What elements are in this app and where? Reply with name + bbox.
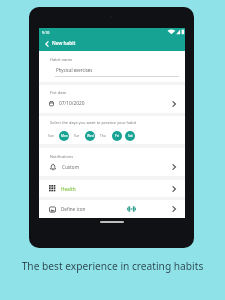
staticText: Tue bbox=[74, 134, 80, 138]
button[interactable]: Tue bbox=[72, 131, 82, 141]
staticText: Habit name bbox=[50, 57, 73, 63]
button[interactable]: Thu bbox=[98, 131, 108, 141]
button[interactable]: Mon bbox=[59, 131, 69, 141]
staticText: Fri bbox=[115, 134, 119, 138]
staticText: Fist date bbox=[50, 90, 67, 96]
button[interactable]: Fri bbox=[112, 131, 122, 141]
button[interactable]: Wed bbox=[85, 131, 95, 141]
button[interactable]: Sun bbox=[46, 131, 56, 141]
staticText: Define icon bbox=[61, 206, 86, 212]
staticText: The best experience in creating habits bbox=[0, 259, 225, 273]
button[interactable]: Back bbox=[42, 39, 51, 48]
button[interactable]: Habit name bbox=[39, 51, 185, 82]
button[interactable]: Fist date bbox=[39, 85, 185, 113]
button[interactable]: Health bbox=[39, 180, 185, 197]
staticText: Health bbox=[61, 186, 76, 192]
staticText: 07/10/2020 bbox=[59, 100, 85, 107]
staticText: 9:10 bbox=[42, 30, 50, 35]
staticText: Mon bbox=[61, 134, 68, 138]
button[interactable]: Select the days you want to practice you… bbox=[39, 116, 185, 144]
staticText: Select the days you want to practice you… bbox=[50, 120, 137, 125]
staticText: Sun bbox=[48, 134, 54, 138]
button[interactable]: Notifications bbox=[39, 148, 185, 176]
button[interactable]: Define icon bbox=[39, 200, 185, 218]
staticText: Notifications bbox=[50, 154, 74, 159]
staticText: Physical exercises bbox=[56, 67, 93, 73]
staticText: Custom bbox=[62, 164, 80, 170]
button[interactable]: Sat bbox=[125, 131, 135, 141]
staticText: New habit bbox=[52, 40, 76, 47]
staticText: Thu bbox=[100, 134, 106, 138]
staticText: Sat bbox=[128, 134, 133, 138]
staticText: Wed bbox=[87, 134, 94, 138]
